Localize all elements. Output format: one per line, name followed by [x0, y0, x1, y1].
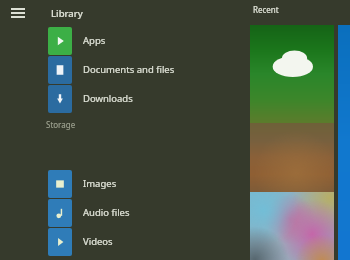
button[interactable]: [338, 25, 350, 260]
button[interactable]: [250, 25, 334, 123]
staticText: Audio files: [83, 206, 130, 219]
staticText: Videos: [83, 235, 113, 248]
button[interactable]: [250, 123, 334, 192]
button[interactable]: Apps: [0, 26, 250, 55]
staticText: Recent: [253, 4, 279, 15]
staticText: Apps: [83, 34, 106, 47]
staticText: Downloads: [83, 92, 133, 105]
button[interactable]: Downloads: [0, 84, 250, 113]
staticText: Storage: [46, 119, 76, 130]
button[interactable]: Images: [0, 169, 250, 198]
staticText: Images: [83, 177, 117, 190]
button[interactable]: Documents and files: [0, 55, 250, 84]
button[interactable]: Videos: [0, 227, 250, 256]
button[interactable]: Audio files: [0, 198, 250, 227]
button[interactable]: Open navigation menu: [7, 2, 29, 24]
staticText: Documents and files: [83, 63, 175, 76]
button[interactable]: [250, 192, 334, 260]
staticText: Library: [51, 7, 83, 20]
